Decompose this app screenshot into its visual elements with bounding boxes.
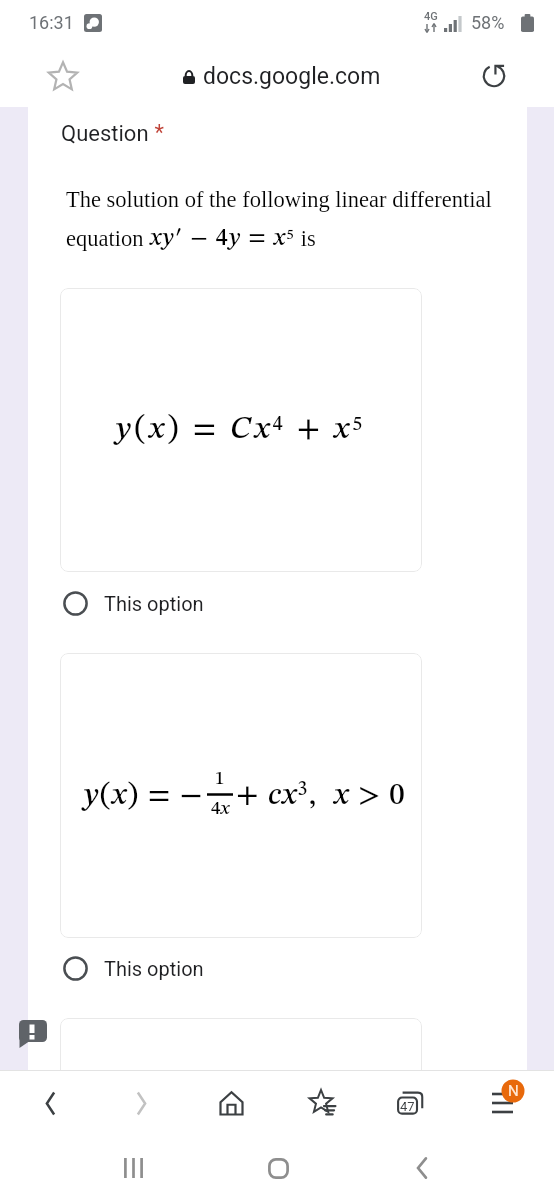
staticText: 16:31 [29, 12, 74, 33]
button[interactable]: Back [402, 1136, 442, 1200]
staticText: 4x [211, 800, 230, 819]
staticText: 4G [424, 10, 438, 23]
staticText: 58% [471, 12, 505, 33]
button[interactable]: Home [258, 1136, 298, 1200]
staticText: Question [61, 121, 149, 147]
button[interactable] [60, 1018, 422, 1098]
button[interactable]: Menu [485, 1070, 521, 1136]
button[interactable]: Bookmarks [304, 1070, 340, 1136]
button[interactable]: Forward [123, 1070, 159, 1136]
button[interactable]: Tabs [393, 1070, 429, 1136]
button[interactable]: Bookmark page [45, 58, 81, 94]
button[interactable]: Recent apps [113, 1136, 153, 1200]
staticText: 47 [400, 1099, 415, 1114]
staticText: xy′ − 4y = x5 [150, 227, 295, 251]
button[interactable]: Reload [475, 57, 513, 95]
button[interactable]: y(x) = − [60, 653, 422, 938]
staticText: is [295, 226, 316, 251]
staticText: The solution of the following linear dif… [66, 187, 492, 212]
staticText: 1 [215, 770, 225, 789]
staticText: This option [104, 957, 204, 980]
staticText: y(x) = − [84, 780, 204, 811]
staticText: N [508, 1082, 519, 1100]
staticText: + cx3, x > 0 [236, 780, 406, 811]
button[interactable]: This option [28, 945, 278, 991]
staticText: This option [104, 592, 204, 615]
button[interactable]: This option [28, 580, 278, 626]
staticText: * [149, 120, 164, 146]
staticText: y(x) = Cx4 + x5 [116, 414, 366, 446]
button[interactable]: y(x) = Cx4 + x5 [60, 288, 422, 572]
button[interactable]: Report a problem [16, 1016, 50, 1050]
staticText: equation [66, 226, 150, 251]
button[interactable]: Back [32, 1070, 68, 1136]
staticText: docs.google.com [203, 63, 381, 90]
button[interactable]: Home [213, 1070, 249, 1136]
